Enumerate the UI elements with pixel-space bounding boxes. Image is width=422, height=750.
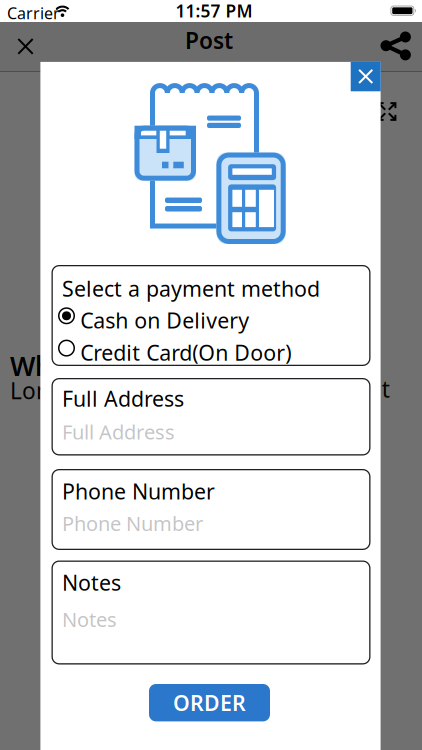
staticText: White Bag — [10, 348, 145, 383]
staticText: Full Address — [62, 384, 184, 412]
button[interactable]: Close — [351, 62, 381, 91]
button[interactable]: ORDER — [149, 684, 270, 721]
button[interactable]: Credit Card(On Door) — [58, 340, 348, 358]
staticText: Post — [185, 25, 233, 55]
staticText: Long — [10, 375, 64, 405]
staticText: Select a payment method — [62, 274, 320, 303]
staticText: t — [382, 374, 390, 404]
staticText: Credit Card(On Door) — [80, 338, 291, 367]
staticText: Phone Number — [62, 477, 215, 505]
staticText: 11:57 PM — [175, 0, 252, 22]
staticText: Cash on Delivery — [80, 306, 249, 334]
staticText: Phone Number — [62, 510, 203, 537]
button[interactable]: Full Address — [51, 378, 370, 455]
staticText: Notes — [62, 568, 121, 596]
button[interactable]: Notes — [51, 560, 370, 664]
button[interactable]: Share — [379, 29, 413, 63]
staticText: ORDER — [173, 688, 246, 717]
button[interactable]: Phone Number — [51, 469, 370, 550]
button[interactable]: Cash on Delivery — [58, 307, 348, 325]
staticText: Full Address — [62, 418, 175, 445]
staticText: Notes — [62, 606, 117, 633]
staticText: Carrier — [7, 2, 60, 24]
button[interactable]: Close — [10, 31, 40, 61]
